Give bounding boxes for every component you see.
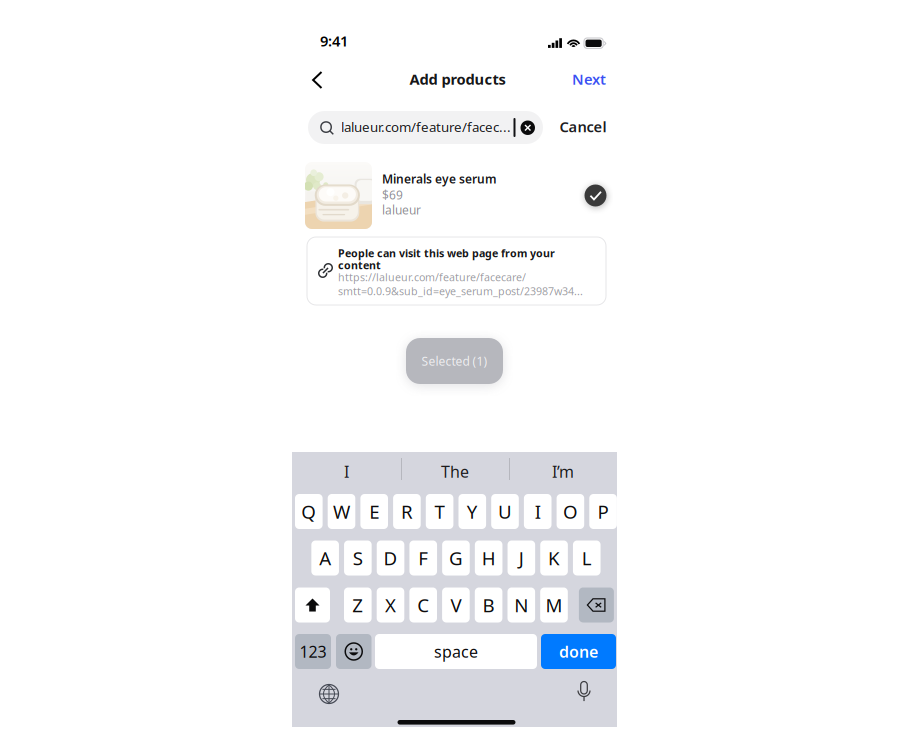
staticText: S [353,546,363,570]
staticText: I [535,499,541,524]
staticText: E [369,499,379,524]
staticText: Q [301,499,316,524]
button[interactable]: done [541,634,616,669]
button[interactable]: Next keyboard [316,681,342,707]
staticText: Add products [409,69,505,89]
button[interactable]: O [557,494,584,529]
button[interactable]: Q [295,494,323,529]
staticText: U [498,499,512,524]
staticText: W [333,499,350,524]
button[interactable]: space [375,634,537,669]
staticText: Z [352,593,363,617]
button[interactable]: J [508,540,535,575]
staticText: 123 [299,641,326,662]
staticText: P [598,499,609,524]
staticText: done [559,641,598,662]
button[interactable]: W [328,494,355,529]
button[interactable]: I’m [509,460,617,483]
button[interactable]: Z [344,587,372,622]
button[interactable]: Dictate [574,679,594,705]
button[interactable]: L [573,540,601,575]
button[interactable]: Selected (1) [406,338,503,384]
staticText: L [582,546,592,570]
button[interactable]: P [589,494,617,529]
button[interactable]: T [426,494,453,529]
staticText: A [319,546,331,570]
button[interactable]: Shift [295,587,330,622]
staticText: J [519,546,524,570]
staticText: lalueur.com/feature/facec... [341,118,511,136]
staticText: N [514,593,528,617]
button[interactable]: 123 [295,634,331,669]
button[interactable]: Back [305,68,329,92]
staticText: 9:41 [320,31,348,50]
button[interactable]: F [409,540,437,575]
staticText: https://lalueur.com/feature/facecare/ [338,270,526,284]
staticText: lalueur [382,202,421,218]
button[interactable]: Y [458,494,486,529]
staticText: V [450,593,461,617]
staticText: G [449,546,463,570]
button[interactable]: Next [567,70,611,88]
button[interactable]: Emoji [336,634,371,669]
staticText: $69 [382,187,403,203]
button[interactable]: M [540,587,568,622]
button[interactable]: A [311,540,339,575]
button[interactable]: C [409,587,437,622]
button[interactable]: H [475,540,502,575]
button[interactable]: Cancel [559,110,607,143]
staticText: Cancel [559,117,606,136]
button[interactable]: G [442,540,470,575]
staticText: R [401,499,413,524]
staticText: I’m [552,461,574,482]
button[interactable]: B [475,587,502,622]
button[interactable]: People can visit this web page from your [307,237,606,305]
button[interactable]: I [292,460,401,483]
button[interactable]: V [442,587,470,622]
staticText: F [418,546,428,570]
staticText: X [385,593,396,617]
button[interactable]: I [524,494,551,529]
button[interactable]: N [507,587,535,622]
staticText: K [548,546,560,570]
staticText: space [434,641,478,662]
button[interactable]: E [360,494,388,529]
staticText: C [417,593,429,617]
staticText: B [483,593,495,617]
staticText: H [482,546,496,570]
staticText: smtt=0.0.9&sub_id=eye_serum_post/23987w3… [338,284,583,298]
staticText: O [563,499,578,524]
staticText: Y [467,499,478,524]
button[interactable]: R [393,494,421,529]
button[interactable]: D [377,540,404,575]
staticText: The [441,461,469,482]
staticText: M [545,593,562,617]
button[interactable]: K [540,540,568,575]
button[interactable]: S [344,540,372,575]
staticText: D [384,546,398,570]
staticText: content [338,258,381,272]
button[interactable]: The [401,460,509,483]
staticText: T [435,499,445,524]
staticText: People can visit this web page from your [338,246,555,260]
button[interactable]: X [377,587,404,622]
button[interactable]: Delete [579,587,614,622]
button[interactable]: U [491,494,519,529]
button[interactable]: Selected [583,183,608,208]
staticText: Selected (1) [421,353,487,369]
staticText: Minerals eye serum [382,171,497,187]
staticText: Next [572,69,606,89]
staticText: I [344,461,349,482]
